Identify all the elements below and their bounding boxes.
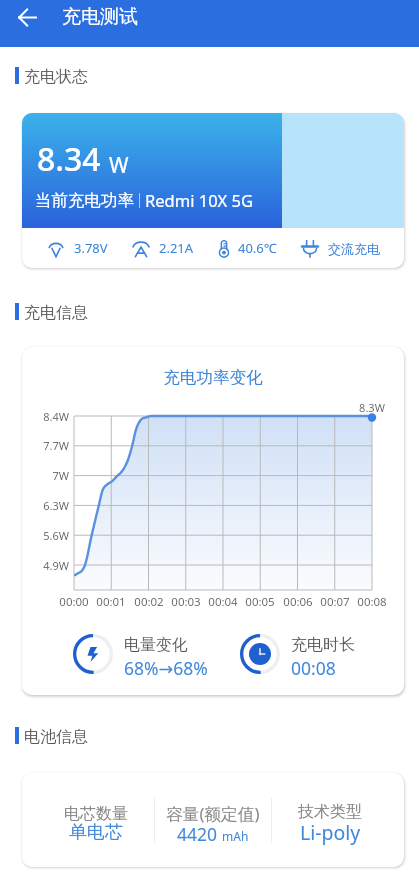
staticText: mAh [222, 828, 249, 844]
staticText: 充电时长 [291, 635, 355, 655]
staticText: 5.6W [22, 528, 69, 543]
staticText: 电量变化 [124, 635, 188, 655]
staticText: 00:08 [347, 594, 397, 610]
staticText: 00:03 [161, 594, 211, 610]
staticText: 40.6℃ [238, 239, 277, 257]
staticText: 00:02 [124, 594, 174, 610]
staticText: 交流充电 [328, 241, 380, 257]
staticText: 单电芯 [69, 821, 123, 844]
button[interactable]: 充电信息 [15, 303, 88, 320]
staticText: 4420 [177, 822, 218, 846]
staticText: 充电功率变化 [22, 367, 404, 388]
staticText: 充电信息 [24, 303, 88, 320]
staticText: 4.9W [22, 558, 69, 573]
button[interactable]: 电芯数量 [38, 804, 154, 847]
staticText: 00:08 [291, 656, 336, 680]
button[interactable]: 技术类型 [272, 802, 388, 849]
button[interactable]: Back [9, 0, 45, 34]
staticText: 00:01 [86, 594, 136, 610]
staticText: 充电状态 [24, 67, 88, 84]
button[interactable]: 容量(额定值) [155, 802, 271, 849]
button[interactable]: 电池信息 [15, 727, 88, 744]
staticText: 8.3W [342, 400, 402, 415]
staticText: 电芯数量 [64, 804, 128, 824]
staticText: Redmi 10X 5G [145, 189, 253, 211]
staticText: 00:05 [235, 594, 285, 610]
staticText: 电池信息 [24, 727, 88, 744]
staticText: 6.3W [22, 498, 69, 513]
staticText: 00:07 [310, 594, 360, 610]
staticText: 68%→68% [124, 656, 208, 680]
staticText: 2.21A [159, 239, 194, 257]
staticText: W [109, 151, 129, 180]
staticText: 7W [22, 468, 69, 483]
staticText: 00:06 [273, 594, 323, 610]
staticText: 充电测试 [62, 5, 138, 29]
staticText: 00:00 [49, 594, 99, 610]
staticText: 8.34 [37, 137, 101, 181]
button[interactable]: 充电状态 [15, 67, 88, 84]
staticText: 当前充电功率 [35, 190, 134, 211]
staticText: 8.4W [22, 409, 69, 424]
staticText: 7.7W [22, 438, 69, 453]
staticText: 00:04 [198, 594, 248, 610]
staticText: 3.78V [74, 239, 108, 257]
staticText: 容量(额定值) [166, 802, 260, 825]
staticText: Li-poly [300, 819, 361, 846]
staticText: 技术类型 [298, 802, 362, 822]
